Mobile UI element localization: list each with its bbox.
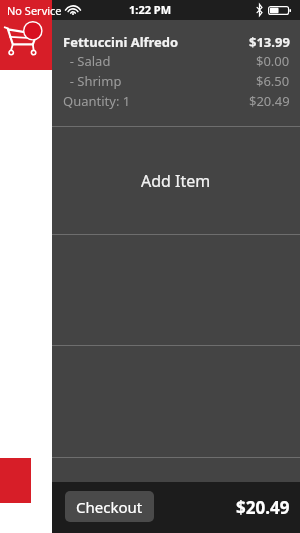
staticText: $0.00 [256, 52, 290, 70]
staticText: Add Item [141, 170, 211, 192]
button[interactable]: Add Item [52, 127, 300, 234]
staticText: No Service [7, 3, 62, 18]
staticText: - Salad [63, 52, 111, 70]
staticText: $20.49 [236, 496, 290, 519]
button[interactable]: Fettuccini Alfredo [52, 20, 300, 126]
button[interactable]: Checkout [65, 491, 154, 522]
staticText: $13.99 [249, 33, 290, 51]
staticText: - Shrimp [63, 72, 122, 90]
staticText: Quantity: 1 [63, 92, 131, 110]
button[interactable]: Cart, 1 item [0, 0, 52, 70]
staticText: $6.50 [256, 72, 290, 90]
staticText: Fettuccini Alfredo [63, 33, 179, 51]
staticText: $20.49 [249, 92, 290, 110]
staticText: 1:22 PM [129, 2, 172, 17]
staticText: Checkout [76, 497, 143, 517]
